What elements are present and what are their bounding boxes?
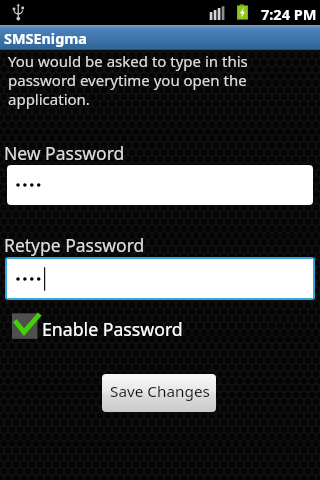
staticText: Retype Password bbox=[4, 233, 145, 257]
other: USB connected bbox=[12, 3, 28, 25]
button[interactable] bbox=[7, 165, 313, 205]
button[interactable]: Save Changes bbox=[102, 374, 216, 412]
staticText: Save Changes bbox=[110, 381, 210, 402]
button[interactable]: Enable Password bbox=[12, 312, 183, 340]
staticText: New Password bbox=[4, 141, 125, 165]
staticText: SMSEnigma bbox=[4, 29, 87, 49]
staticText: Enable Password bbox=[42, 317, 183, 341]
staticText: You would be asked to type in this passw… bbox=[8, 51, 258, 109]
button[interactable] bbox=[7, 259, 313, 298]
staticText: 7:24 PM bbox=[261, 4, 317, 24]
